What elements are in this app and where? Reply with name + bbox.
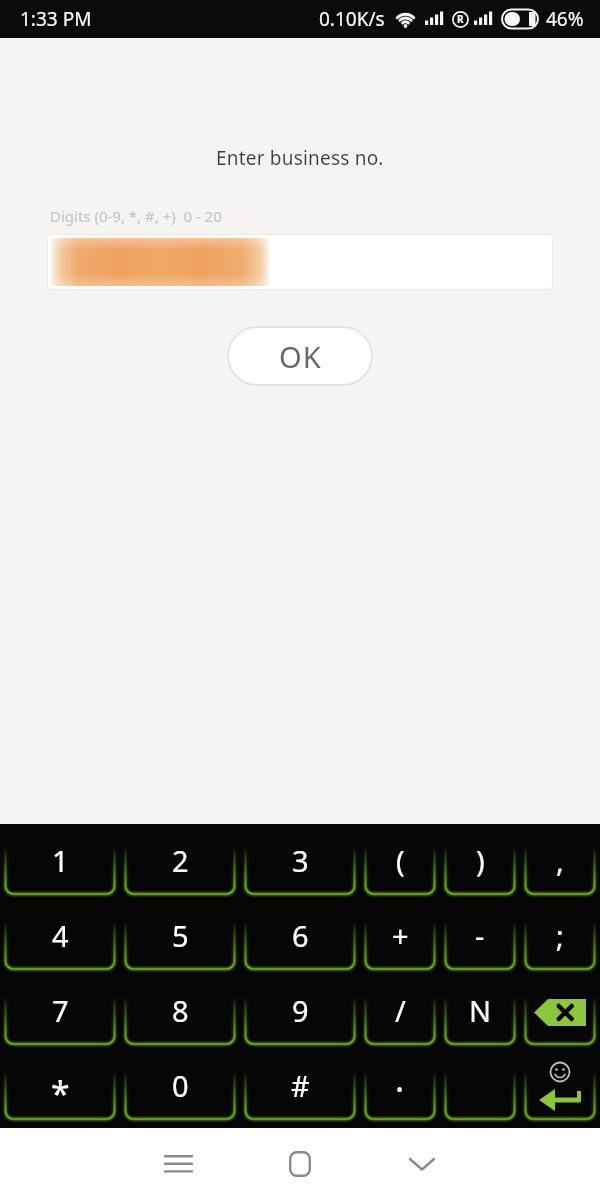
staticText: ,	[556, 841, 564, 880]
button[interactable]: 2	[124, 824, 236, 899]
button[interactable]	[524, 974, 596, 1049]
staticText: 7	[52, 991, 69, 1030]
button[interactable]: 0	[124, 1049, 236, 1124]
button[interactable]	[392, 1134, 452, 1194]
staticText: #	[291, 1066, 310, 1105]
button[interactable]: 7	[4, 974, 116, 1049]
button[interactable]: 3	[244, 824, 356, 899]
button[interactable]: 9	[244, 974, 356, 1049]
staticText: 4	[52, 916, 69, 955]
staticText: *	[51, 1070, 70, 1116]
button[interactable]: 5	[124, 899, 236, 974]
button[interactable]: (	[364, 824, 436, 899]
button[interactable]: )	[444, 824, 516, 899]
button[interactable]: -	[444, 899, 516, 974]
staticText: /	[395, 991, 406, 1030]
staticText: )	[476, 841, 485, 880]
button[interactable]	[270, 1134, 330, 1194]
staticText: 6	[292, 916, 309, 955]
staticText: .	[395, 1056, 405, 1102]
staticText: 3	[292, 841, 309, 880]
button[interactable]: 6	[244, 899, 356, 974]
staticText: (	[396, 841, 405, 880]
staticText: ;	[556, 916, 564, 955]
staticText: +	[392, 916, 409, 955]
staticText: 2	[172, 841, 189, 880]
staticText: -	[475, 916, 485, 955]
button[interactable]: /	[364, 974, 436, 1049]
button[interactable]: 8	[124, 974, 236, 1049]
button[interactable]: 1	[4, 824, 116, 899]
staticText: 9	[292, 991, 309, 1030]
button[interactable]: *	[4, 1049, 116, 1124]
staticText: 1	[52, 841, 69, 880]
button[interactable]: +	[364, 899, 436, 974]
button[interactable]	[524, 1049, 596, 1124]
staticText: Digits (0-9, *, #, +) 0 - 20	[50, 206, 222, 226]
button[interactable]: OK	[227, 326, 373, 386]
staticText: Enter business no.	[216, 145, 384, 171]
button[interactable]: ,	[524, 824, 596, 899]
button[interactable]: #	[244, 1049, 356, 1124]
staticText: N	[469, 991, 492, 1030]
staticText: 46%	[546, 6, 584, 32]
button[interactable]	[148, 1134, 208, 1194]
button[interactable]: .	[364, 1049, 436, 1124]
button[interactable]	[47, 234, 553, 290]
staticText: 1:33 PM	[20, 6, 92, 32]
button[interactable]	[444, 1049, 516, 1124]
staticText: R	[457, 12, 464, 26]
button[interactable]: N	[444, 974, 516, 1049]
button[interactable]: ;	[524, 899, 596, 974]
staticText: 0	[172, 1066, 189, 1105]
button[interactable]: 4	[4, 899, 116, 974]
staticText: 5	[172, 916, 189, 955]
staticText: OK	[279, 337, 322, 376]
staticText: 0.10K/s	[319, 6, 385, 32]
staticText: 8	[172, 991, 189, 1030]
